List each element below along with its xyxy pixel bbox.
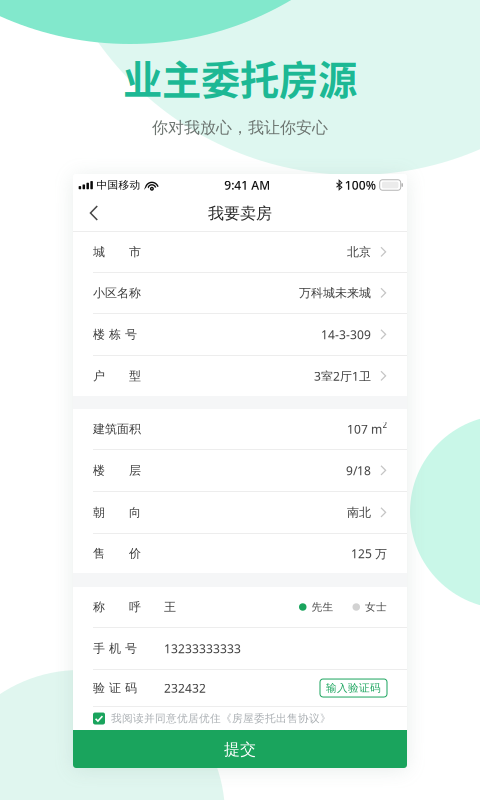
button[interactable]: 我阅读并同意优居优住《房屋委托出售协议》 [73,707,407,730]
staticText: 我要卖房 [208,204,272,223]
button[interactable]: 朝 向 [73,492,407,533]
staticText: 先生 [311,600,333,613]
staticText: 楼 层 [93,463,141,478]
staticText: 小区名称 [93,286,141,300]
staticText: 户 型 [93,369,141,383]
staticText: 提交 [224,740,256,759]
button[interactable]: 输入验证码 [320,679,387,697]
staticText: 手 机 号 [93,641,137,656]
staticText: 验 证 码 [93,681,137,695]
staticText: 9/18 [346,462,371,478]
button[interactable]: 户 型 [73,356,407,396]
staticText: 9:41 AM [224,177,270,193]
staticText: 中国移动 [96,178,140,191]
button[interactable]: 楼 层 [73,450,407,491]
staticText: 你对我放心，我让你安心 [152,118,328,138]
button[interactable]: 楼 栋 号 [73,314,407,355]
button[interactable]: Back [77,197,111,230]
staticText: 13233333333 [164,640,241,656]
staticText: 232432 [164,680,206,696]
staticText: 朝 向 [93,505,141,520]
staticText: 楼 栋 号 [93,327,137,342]
staticText: 业主委托房源 [123,49,357,106]
staticText: 107 m [347,421,382,437]
staticText: 125 万 [351,545,387,561]
staticText: 王 [164,600,176,614]
staticText: 建筑面积 [93,422,141,436]
staticText: 南北 [347,505,371,520]
staticText: 2 [382,420,387,430]
staticText: 女士 [365,600,387,613]
button[interactable]: 小区名称 [73,273,407,313]
staticText: 北京 [347,245,371,259]
staticText: 城 市 [93,245,141,259]
staticText: 万科城未来城 [299,286,371,300]
button[interactable]: 城 市 [73,232,407,272]
button[interactable]: 女士 [352,600,387,613]
button[interactable]: 建筑面积 [73,409,407,449]
button[interactable]: 售 价 [73,534,407,573]
staticText: 14-3-309 [321,326,371,342]
staticText: 3室2厅1卫 [314,368,371,384]
button[interactable]: 称 呼 [73,587,407,627]
staticText: 称 呼 [93,600,141,614]
button[interactable]: 手 机 号 [73,628,407,669]
staticText: 100% [345,177,376,193]
button[interactable]: 先生 [299,600,333,613]
staticText: 输入验证码 [326,681,381,694]
staticText: 我阅读并同意优居优住《房屋委托出售协议》 [111,712,331,725]
button[interactable]: 提交 [73,730,407,769]
staticText: 售 价 [93,546,141,561]
